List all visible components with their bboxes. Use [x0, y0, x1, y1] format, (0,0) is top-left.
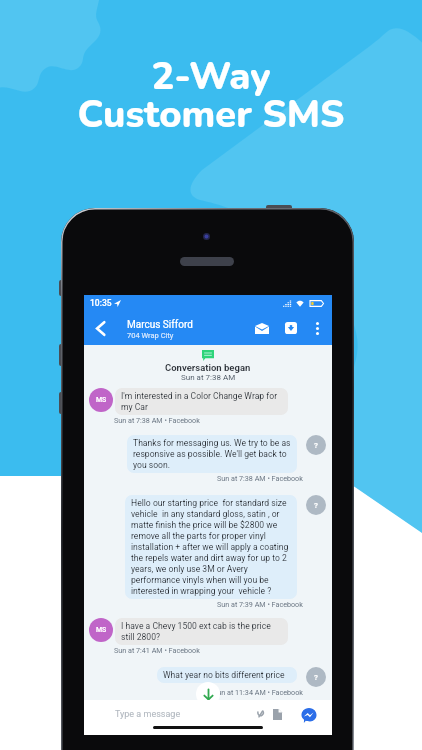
staticText: What year no bits different price [163, 670, 285, 680]
staticText: ? [314, 441, 318, 450]
button[interactable]: Back [84, 311, 116, 345]
button[interactable]: Scroll to newest message [196, 682, 220, 706]
staticText: 2-Way Customer SMS [0, 51, 422, 140]
staticText: Thanks for messaging us. We try to be as… [133, 438, 291, 470]
staticText: MS [96, 626, 107, 634]
staticText: Sun at 7:39 AM • Facebook [217, 600, 303, 608]
staticText: MS [96, 396, 107, 404]
button[interactable]: Type a message [101, 704, 289, 725]
staticText: Sun at 11:34 AM • Facebook [213, 688, 303, 696]
staticText: 704 Wrap City [127, 331, 174, 340]
staticText: Sun at 7:38 AM • Facebook [217, 474, 303, 482]
staticText: ? [314, 501, 318, 510]
staticText: I'm interested in a Color Change Wrap fo… [121, 391, 282, 412]
staticText: Marcus Sifford [127, 319, 193, 331]
staticText: 10:35 [90, 298, 112, 308]
staticText: Type a message [115, 709, 181, 720]
staticText: ? [314, 673, 318, 682]
button[interactable]: More options [305, 311, 329, 345]
staticText: Sun at 7:41 AM • Facebook [114, 646, 200, 654]
staticText: Sun at 7:38 AM [181, 373, 236, 382]
staticText: I have a Chevy 1500 ext cab is the price… [121, 621, 282, 642]
staticText: Hello our starting price for standard si… [131, 498, 291, 596]
button[interactable]: Archive [276, 311, 305, 345]
button[interactable]: Email [247, 311, 276, 345]
button[interactable]: Send message via Messenger [295, 701, 322, 728]
staticText: Sun at 7:38 AM • Facebook [114, 416, 200, 424]
staticText: Conversation began [165, 362, 251, 373]
